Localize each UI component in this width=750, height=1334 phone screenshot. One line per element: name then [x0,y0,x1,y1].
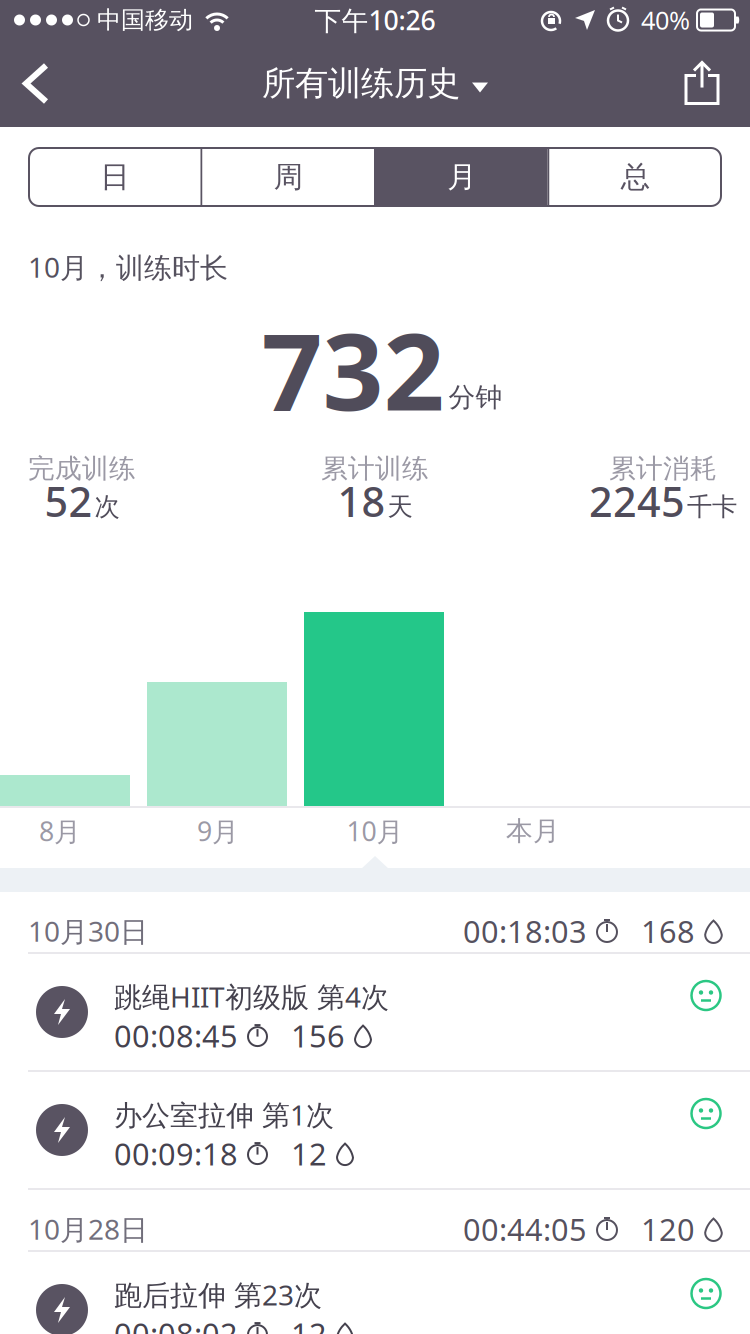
button[interactable] [0,63,70,103]
staticText: 00:09:18 [114,1133,238,1174]
staticText: 2245 [589,474,685,528]
staticText: 日 [100,159,129,195]
staticText: 所有训练历史 [262,63,460,104]
staticText: 9月 [197,813,239,849]
button[interactable]: 总 [549,148,721,206]
button[interactable]: 跳绳HIIT初级版 第4次 [0,954,750,1072]
staticText: 千卡 [687,491,737,522]
staticText: 00:18:03 [463,911,587,951]
staticText: 跑后拉伸 第23次 [114,1276,322,1313]
staticText: 分钟 [448,381,502,414]
staticText: 10月，训练时长 [28,248,228,286]
staticText: 10月28日 [28,1210,148,1248]
staticText: 18 [337,474,385,528]
staticText: 办公室拉伸 第1次 [114,1096,334,1133]
staticText: 52 [44,474,92,528]
staticText: 累计训练 [321,452,429,485]
staticText: 8月 [39,813,81,849]
staticText: 月 [447,159,476,195]
staticText: 00:08:02 [114,1313,238,1334]
button[interactable]: 办公室拉伸 第1次 [0,1072,750,1188]
staticText: 累计消耗 [609,452,717,485]
button[interactable]: 月 [376,148,547,206]
staticText: 中国移动 [97,5,193,35]
staticText: 732 [261,298,444,440]
staticText: 次 [94,491,119,522]
button[interactable]: 所有训练历史 [262,63,488,104]
staticText: 168 [641,911,695,951]
staticText: 40% [641,3,690,37]
button[interactable] [686,61,750,105]
staticText: 跳绳HIIT初级版 第4次 [114,978,389,1015]
staticText: 12 [291,1313,327,1334]
staticText: 120 [641,1209,695,1249]
staticText: 周 [274,159,303,195]
staticText: 00:08:45 [114,1015,238,1056]
button[interactable]: 跑后拉伸 第23次 [0,1252,750,1334]
staticText: 本月 [506,815,560,847]
button[interactable]: 周 [202,148,374,206]
staticText: 00:44:05 [463,1209,587,1249]
staticText: 156 [291,1015,345,1056]
staticText: 10月30日 [28,912,148,950]
staticText: 下午10:26 [314,2,435,38]
staticText: 12 [291,1133,327,1174]
staticText: 完成训练 [28,452,136,485]
staticText: 10月 [346,813,403,849]
staticText: 天 [387,491,412,522]
staticText: 总 [621,159,650,195]
button[interactable]: 日 [29,148,200,206]
